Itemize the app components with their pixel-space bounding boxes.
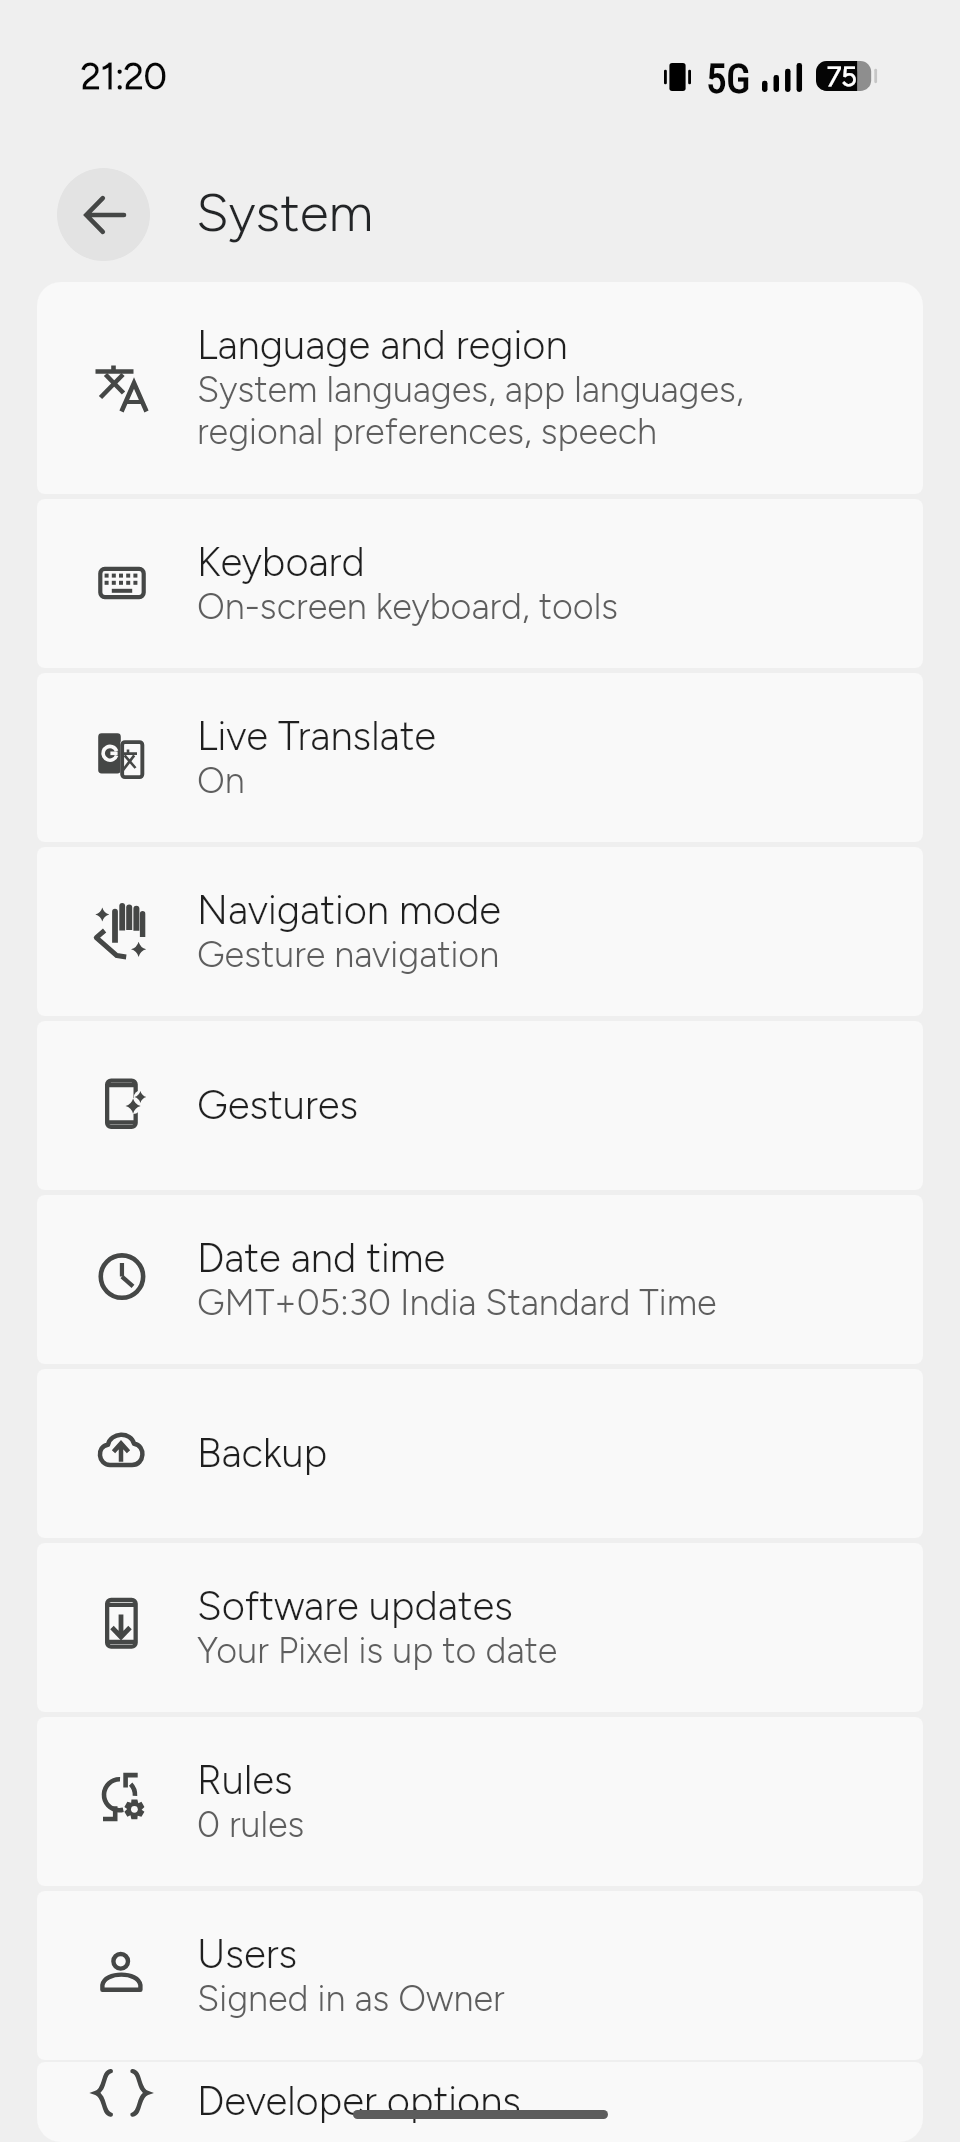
staticText: Gestures	[197, 1083, 359, 1129]
staticText: On	[197, 760, 245, 802]
staticText: Developer options	[197, 2079, 521, 2125]
button[interactable]: Language and region	[37, 282, 923, 494]
staticText: System	[196, 181, 374, 245]
button[interactable]: Live Translate	[37, 673, 923, 842]
button[interactable]: Gestures	[37, 1021, 923, 1190]
staticText: 0 rules	[197, 1804, 305, 1846]
button[interactable]: Software updates	[37, 1543, 923, 1712]
button[interactable]: Users	[37, 1891, 923, 2060]
staticText: Backup	[197, 1431, 328, 1477]
staticText: Live Translate	[197, 714, 437, 760]
staticText: Keyboard	[197, 540, 365, 586]
staticText: Software updates	[197, 1584, 513, 1630]
button[interactable]: Back	[57, 168, 150, 261]
staticText: Navigation mode	[197, 888, 501, 934]
staticText: Rules	[197, 1758, 293, 1804]
staticText: Gesture navigation	[197, 934, 500, 976]
staticText: Date and time	[197, 1236, 446, 1282]
button[interactable]: Rules	[37, 1717, 923, 1886]
staticText: 5G	[706, 55, 751, 103]
button[interactable]: Developer options	[37, 2062, 923, 2142]
staticText: 21:20	[81, 55, 167, 98]
button[interactable]: Keyboard	[37, 499, 923, 668]
staticText: Users	[197, 1932, 298, 1978]
staticText: 75	[827, 60, 857, 90]
button[interactable]: Backup	[37, 1369, 923, 1538]
staticText: System languages, app languages, regiona…	[197, 369, 744, 453]
staticText: Language and region	[197, 323, 568, 369]
button[interactable]: Navigation mode	[37, 847, 923, 1016]
staticText: Your Pixel is up to date	[197, 1630, 558, 1672]
staticText: GMT+05:30 India Standard Time	[197, 1282, 717, 1324]
staticText: Signed in as Owner	[197, 1978, 505, 2020]
button[interactable]: Date and time	[37, 1195, 923, 1364]
staticText: On-screen keyboard, tools	[197, 586, 619, 628]
